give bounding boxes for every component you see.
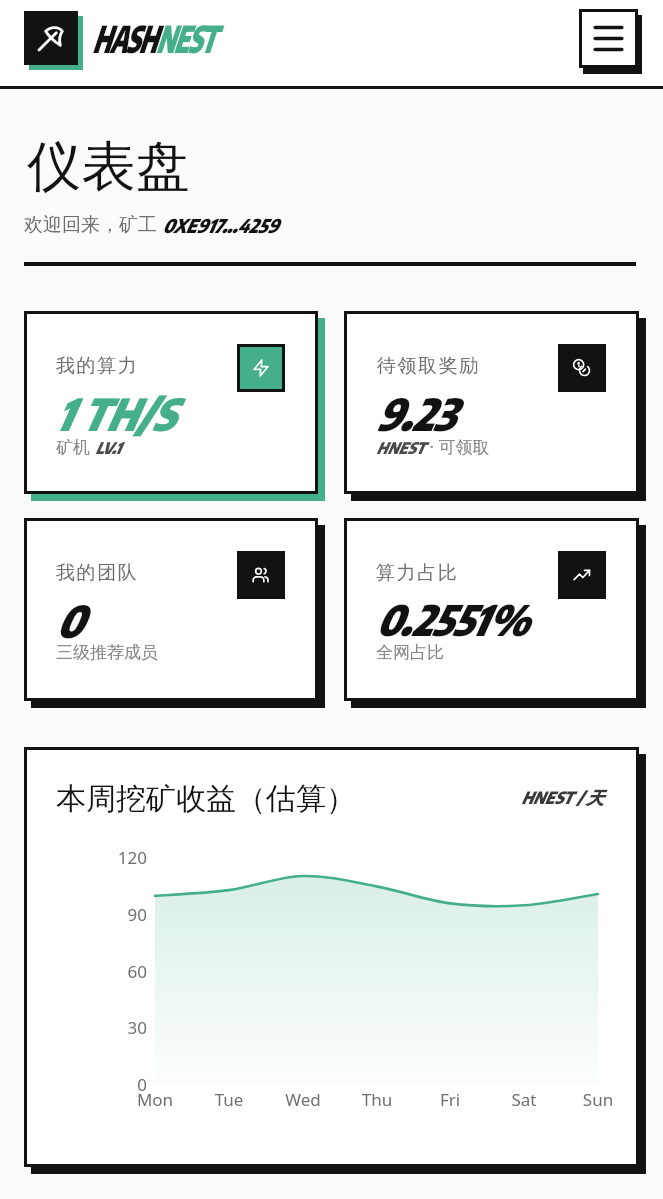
staticText: 本周挖矿收益（估算）	[56, 780, 356, 818]
staticText: HNEST / 天	[521, 786, 604, 809]
button[interactable]: Menu	[579, 9, 643, 73]
button[interactable]: 我的团队	[24, 518, 318, 701]
staticText: 90	[27, 903, 147, 926]
staticText: 待领取奖励	[376, 354, 479, 378]
staticText: HASH	[92, 15, 156, 61]
staticText: Sun	[558, 1088, 638, 1111]
staticText: LV.1	[95, 438, 121, 458]
button[interactable]: 算力占比	[344, 518, 639, 701]
button[interactable]: 待领取奖励	[344, 311, 639, 494]
staticText: 30	[27, 1016, 147, 1039]
staticText: NEST	[156, 15, 214, 61]
staticText: 我的算力	[56, 354, 139, 378]
staticText: 全网占比	[376, 642, 444, 663]
staticText: · 可领取	[425, 435, 490, 458]
staticText: Mon	[115, 1088, 195, 1111]
staticText: 9.23	[375, 386, 454, 441]
staticText: Tue	[189, 1088, 269, 1111]
staticText: 60	[27, 960, 147, 983]
staticText: 矿机	[56, 435, 95, 458]
staticText: 三级推荐成员	[56, 642, 158, 663]
staticText: 算力占比	[376, 561, 459, 585]
staticText: 欢迎回来，矿工	[24, 211, 162, 237]
staticText: Fri	[410, 1088, 490, 1111]
staticText: 我的团队	[56, 561, 139, 585]
staticText: Thu	[337, 1088, 417, 1111]
button[interactable]: 我的算力	[24, 311, 318, 494]
staticText: HNEST	[376, 438, 425, 458]
staticText: 仪表盘	[27, 133, 191, 201]
staticText: 0XE917...4259	[162, 213, 278, 237]
staticText: Sat	[484, 1088, 564, 1111]
staticText: 120	[27, 846, 147, 869]
staticText: 0.2551%	[375, 593, 528, 645]
staticText: 0	[55, 593, 82, 648]
staticText: 0	[27, 1073, 147, 1096]
staticText: 1 TH/S	[55, 386, 174, 441]
staticText: Wed	[263, 1088, 343, 1111]
